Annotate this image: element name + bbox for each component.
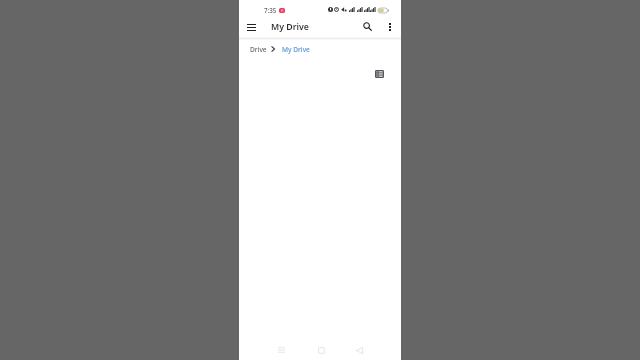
staticText: My Drive bbox=[282, 45, 310, 54]
button[interactable]: My Drive bbox=[282, 45, 310, 54]
staticText: Drive bbox=[250, 45, 267, 54]
button[interactable]: Back bbox=[349, 341, 370, 359]
button[interactable]: Home bbox=[311, 341, 332, 359]
button[interactable]: Drive bbox=[250, 45, 267, 54]
button[interactable]: Switch to list view bbox=[373, 67, 386, 80]
staticText: 7:35 bbox=[264, 6, 277, 14]
button[interactable]: Open navigation drawer bbox=[243, 18, 260, 35]
staticText: My Drive bbox=[271, 21, 309, 33]
button[interactable]: Search bbox=[359, 18, 376, 35]
button[interactable]: Recent apps bbox=[271, 341, 292, 359]
button[interactable]: More options bbox=[381, 18, 398, 35]
